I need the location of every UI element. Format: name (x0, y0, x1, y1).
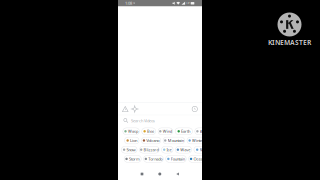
staticText: Air (200, 129, 206, 134)
staticText: Search Videos (131, 118, 155, 123)
staticText: Lion (130, 138, 137, 143)
button[interactable]: Snow (121, 146, 137, 153)
button[interactable]: Rain (194, 146, 209, 153)
staticText: Wave (180, 147, 190, 152)
button[interactable]: Suggestions (130, 103, 139, 115)
button[interactable]: Winter (187, 137, 205, 144)
button[interactable]: Ocean (189, 155, 206, 162)
staticText: Ocean (193, 156, 204, 161)
button[interactable]: Tornado (144, 155, 163, 162)
button[interactable]: Wind (158, 128, 173, 135)
staticText: Tornado (148, 156, 162, 161)
button[interactable]: Fountain (166, 155, 186, 162)
staticText: Wind (163, 129, 172, 134)
button[interactable]: Recent (190, 103, 199, 115)
button[interactable]: Recent apps (135, 169, 148, 179)
staticText: LTE (186, 1, 189, 5)
button[interactable]: Storm (124, 155, 141, 162)
button[interactable]: Report (120, 103, 130, 115)
button[interactable]: Back (171, 169, 184, 179)
staticText: Snow (126, 147, 135, 152)
staticText: Storm (129, 156, 140, 161)
button[interactable]: Home (153, 169, 166, 179)
staticText: Fountain (171, 156, 185, 161)
button[interactable]: Search Videos (118, 115, 202, 126)
button[interactable]: Volcano (141, 137, 161, 144)
button[interactable]: Blizzard (139, 146, 159, 153)
staticText: Wasp (128, 129, 138, 134)
button[interactable]: Earth (175, 128, 192, 135)
button[interactable]: Bee (142, 128, 156, 135)
staticText: Ice (167, 147, 172, 152)
button[interactable]: Air (195, 128, 207, 135)
staticText: 1:08 (125, 1, 132, 6)
button[interactable]: Lion (124, 137, 139, 144)
staticText: Earth (181, 129, 190, 134)
staticText: KINEMASTER (268, 38, 311, 47)
staticText: Blizzard (144, 147, 159, 152)
button[interactable]: Mountain (163, 137, 185, 144)
staticText: Rain (200, 147, 207, 152)
button[interactable]: Wave (175, 146, 192, 153)
button[interactable]: Ice (161, 146, 173, 153)
staticText: Mountain (168, 138, 184, 143)
staticText: Volcano (146, 138, 159, 143)
staticText: Bee (147, 129, 154, 134)
staticText: Winter (192, 138, 204, 143)
button[interactable]: Wasp (123, 128, 139, 135)
